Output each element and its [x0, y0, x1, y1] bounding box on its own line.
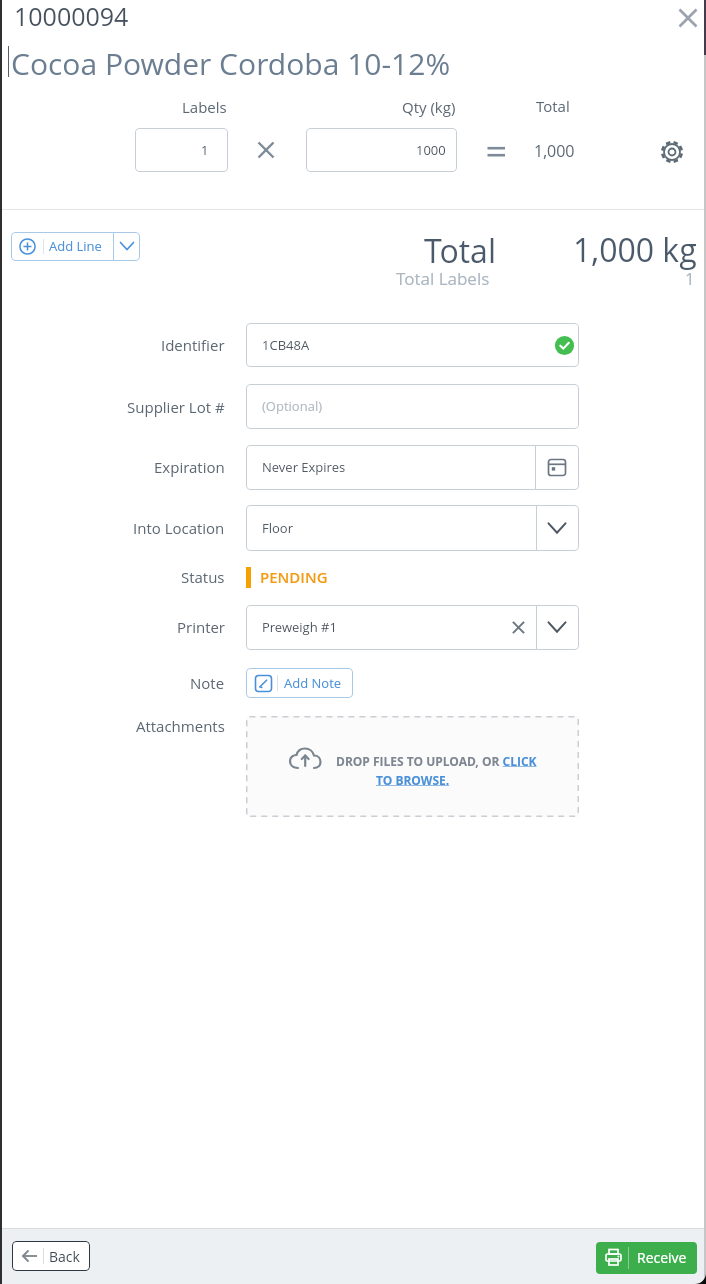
button[interactable] — [246, 605, 579, 650]
staticText: Into Location — [133, 518, 225, 538]
staticText: 1,000 — [534, 140, 575, 162]
staticText: Status — [181, 567, 225, 587]
button[interactable] — [246, 445, 579, 490]
staticText: Note — [190, 673, 225, 693]
button[interactable] — [246, 505, 579, 551]
staticText: (Optional) — [262, 397, 323, 415]
staticText: Expiration — [154, 457, 225, 477]
button[interactable] — [12, 1241, 90, 1271]
staticText: Floor — [262, 519, 294, 537]
button[interactable] — [246, 323, 579, 367]
button[interactable]: TO BROWSE. — [330, 769, 495, 791]
staticText: Receive — [637, 1248, 687, 1267]
button[interactable] — [124, 232, 140, 261]
staticText: Total — [536, 96, 570, 116]
staticText: Total — [424, 229, 496, 273]
staticText: 1 — [201, 141, 209, 159]
staticText: Never Expires — [262, 458, 346, 476]
button[interactable] — [508, 617, 529, 638]
button[interactable] — [246, 384, 579, 429]
staticText: Supplier Lot # — [127, 397, 225, 417]
button[interactable] — [673, 3, 703, 33]
staticText: 10000094 — [14, 0, 129, 33]
button[interactable] — [306, 128, 457, 172]
staticText: 1 — [685, 267, 695, 290]
staticText: TO BROWSE. — [376, 772, 450, 788]
staticText: Printer — [177, 617, 225, 637]
staticText: 1CB48A — [262, 336, 310, 354]
staticText: Add Line — [49, 237, 102, 255]
staticText: 1000 — [416, 141, 446, 159]
staticText: 1,000 kg — [573, 228, 697, 272]
staticText: Preweigh #1 — [262, 618, 337, 636]
staticText: Add Note — [284, 674, 342, 692]
button[interactable] — [246, 716, 579, 817]
staticText: Qty (kg) — [402, 97, 456, 117]
staticText: Attachments — [136, 716, 225, 736]
staticText: DROP FILES TO UPLOAD, OR CLICK — [336, 753, 537, 769]
button[interactable] — [246, 668, 353, 698]
button[interactable] — [657, 137, 687, 167]
staticText: Back — [49, 1247, 80, 1266]
staticText: Cocoa Powder Cordoba 10-12% — [11, 43, 451, 84]
staticText: Labels — [182, 97, 227, 117]
button[interactable] — [11, 232, 124, 261]
button[interactable] — [596, 1242, 697, 1274]
staticText: Total Labels — [396, 267, 490, 290]
button[interactable] — [135, 128, 228, 172]
staticText: Identifier — [161, 335, 225, 355]
staticText: PENDING — [260, 567, 328, 587]
